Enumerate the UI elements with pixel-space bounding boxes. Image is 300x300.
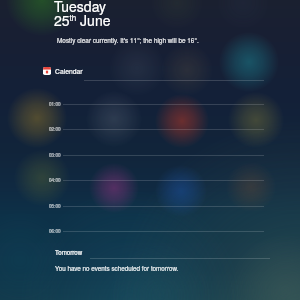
staticText: Tomorrow <box>55 248 83 257</box>
staticText: 06:00 <box>49 228 61 235</box>
staticText: 25th June <box>54 10 111 30</box>
button[interactable]: Calendar <box>43 66 83 76</box>
staticText: You have no events scheduled for tomorro… <box>55 264 179 273</box>
staticText: Mostly clear currently. It's 11°; the hi… <box>57 36 199 45</box>
staticText: 05:00 <box>49 203 61 210</box>
staticText: 01:00 <box>49 101 61 108</box>
staticText: 03:00 <box>49 152 61 159</box>
staticText: 04:00 <box>49 177 61 184</box>
staticText: 02:00 <box>49 126 61 133</box>
staticText: Calendar <box>55 66 83 76</box>
staticText: Tuesday <box>54 0 107 16</box>
